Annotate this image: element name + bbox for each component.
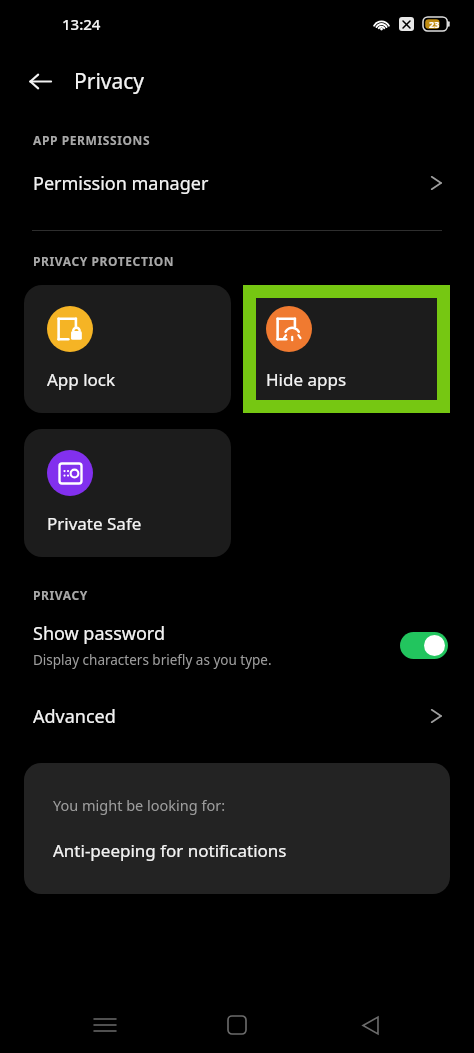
staticText: PRIVACY PROTECTION xyxy=(33,253,175,269)
staticText: 23 xyxy=(429,18,440,30)
staticText: 13:24 xyxy=(62,14,101,34)
staticText: Anti-peeping for notifications xyxy=(53,839,287,862)
staticText: App lock xyxy=(47,368,116,391)
staticText: Hide apps xyxy=(266,368,347,391)
button[interactable]: Private Safe xyxy=(24,429,231,557)
button[interactable]: Hide apps xyxy=(243,285,450,413)
button[interactable] xyxy=(400,632,448,659)
staticText: PRIVACY xyxy=(33,587,88,603)
button[interactable]: Show password xyxy=(0,617,474,673)
staticText: Privacy xyxy=(74,67,145,96)
button[interactable]: Permission manager xyxy=(0,162,474,204)
button[interactable]: You might be looking for: xyxy=(24,763,450,894)
staticText: Advanced xyxy=(33,704,116,729)
staticText: APP PERMISSIONS xyxy=(33,132,151,148)
button[interactable]: Advanced xyxy=(0,695,474,737)
button[interactable]: Home xyxy=(209,997,265,1053)
staticText: Show password xyxy=(33,621,165,646)
button[interactable]: Recent apps xyxy=(77,997,133,1053)
staticText: Permission manager xyxy=(33,171,209,196)
button[interactable]: App lock xyxy=(24,285,231,413)
button[interactable]: Back xyxy=(342,997,398,1053)
staticText: Display characters briefly as you type. xyxy=(33,651,272,669)
staticText: You might be looking for: xyxy=(53,795,226,815)
button[interactable]: Back xyxy=(18,59,62,103)
staticText: Private Safe xyxy=(47,512,142,535)
